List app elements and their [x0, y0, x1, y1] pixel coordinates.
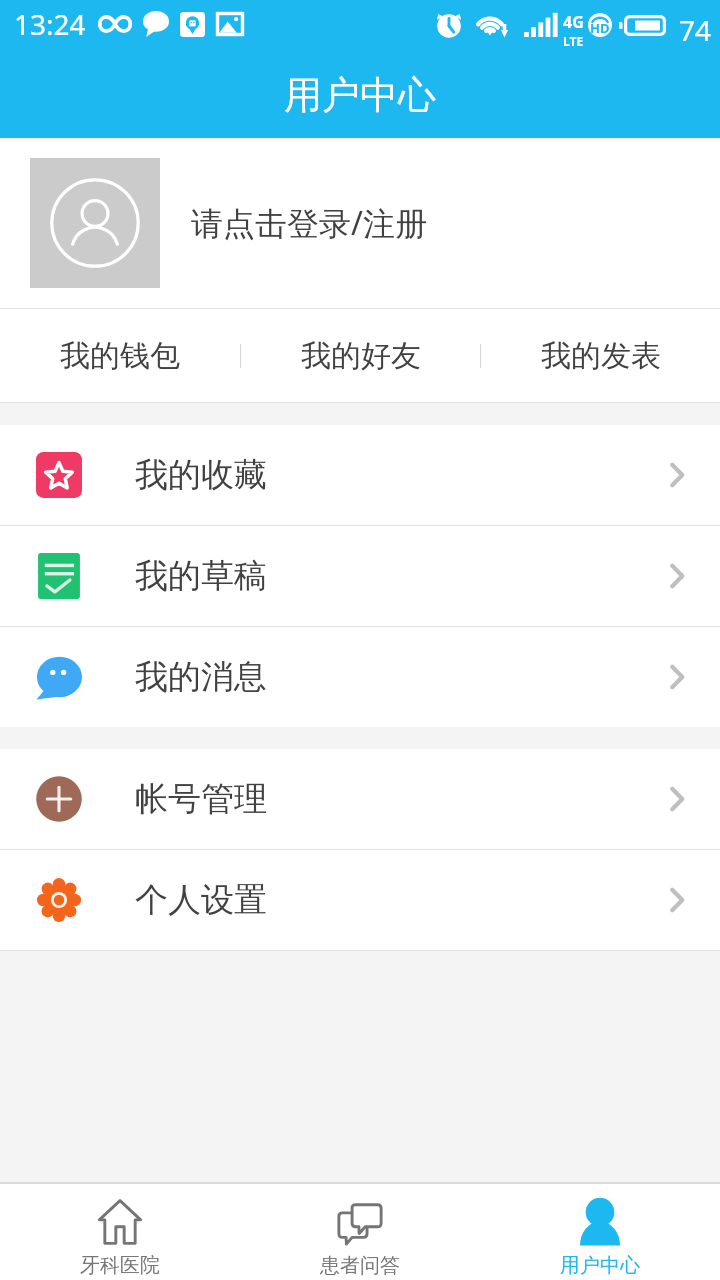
- button[interactable]: 我的好友: [241, 309, 480, 402]
- staticText: 我的草稿: [135, 555, 267, 597]
- staticText: 帐号管理: [135, 778, 267, 820]
- staticText: 牙科医院: [80, 1253, 160, 1278]
- staticText: 我的发表: [541, 337, 661, 375]
- staticText: 我的收藏: [135, 454, 267, 496]
- staticText: 患者问答: [320, 1253, 400, 1278]
- staticText: 13:24: [14, 5, 86, 43]
- staticText: 用户中心: [284, 71, 436, 119]
- staticText: 请点击登录/注册: [191, 201, 427, 245]
- staticText: 个人设置: [135, 879, 267, 921]
- staticText: 我的钱包: [60, 337, 180, 375]
- staticText: HD: [590, 19, 610, 37]
- staticText: 4G: [563, 11, 584, 33]
- button[interactable]: 我的发表: [481, 309, 720, 402]
- button[interactable]: 我的草稿: [0, 526, 720, 626]
- button[interactable]: 我的收藏: [0, 425, 720, 525]
- staticText: 74: [679, 11, 712, 49]
- button[interactable]: 我的消息: [0, 627, 720, 727]
- button[interactable]: 我的钱包: [0, 309, 240, 402]
- staticText: 我的好友: [301, 337, 421, 375]
- button[interactable]: 患者问答: [240, 1184, 480, 1280]
- button[interactable]: 牙科医院: [0, 1184, 240, 1280]
- staticText: LTE: [563, 33, 584, 49]
- staticText: 我的消息: [135, 656, 267, 698]
- button[interactable]: 请点击登录/注册: [0, 138, 720, 308]
- staticText: 用户中心: [560, 1253, 640, 1278]
- button[interactable]: 帐号管理: [0, 749, 720, 849]
- button[interactable]: 个人设置: [0, 850, 720, 950]
- button[interactable]: 用户中心: [480, 1184, 720, 1280]
